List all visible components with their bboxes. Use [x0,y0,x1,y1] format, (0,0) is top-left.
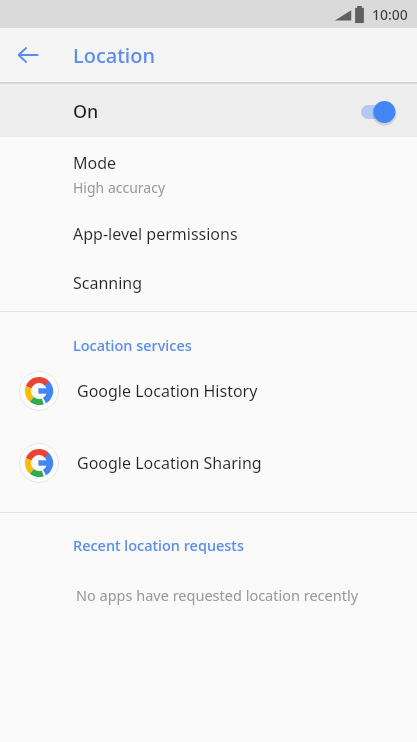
button[interactable]: Mode [0,139,417,209]
button[interactable]: Google Location History [0,355,417,427]
staticText: No apps have requested location recently [76,585,359,605]
staticText: Google Location Sharing [77,452,262,474]
staticText: Scanning [73,272,143,294]
button[interactable]: Google Location Sharing [0,427,417,499]
staticText: Google Location History [77,380,258,402]
button[interactable]: Back [8,35,48,75]
staticText: Location [73,42,155,69]
staticText: Recent location requests [73,535,244,555]
button[interactable]: Scanning [0,258,417,307]
staticText: Mode [73,152,117,174]
staticText: 10:00 [372,5,408,24]
staticText: Location services [73,335,192,355]
button[interactable]: On [0,86,417,137]
button[interactable]: App-level permissions [0,209,417,258]
staticText: High accuracy [73,178,166,197]
staticText: App-level permissions [73,223,238,245]
staticText: On [73,99,99,124]
